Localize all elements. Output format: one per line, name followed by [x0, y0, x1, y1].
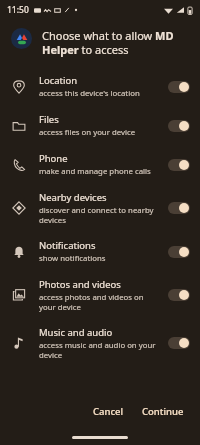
- button[interactable]: Toggle permission: [168, 81, 190, 93]
- staticText: Cancel: [93, 405, 124, 418]
- staticText: Files: [39, 113, 59, 126]
- staticText: access music and audio on your device: [39, 340, 160, 360]
- button[interactable]: Continue: [136, 400, 190, 423]
- staticText: Choose what to allow MD Helper to access: [42, 28, 186, 57]
- button[interactable]: Nearby devices: [0, 184, 200, 232]
- staticText: Continue: [142, 405, 184, 418]
- staticText: Photos and videos: [39, 278, 121, 291]
- button[interactable]: Toggle permission: [168, 289, 190, 301]
- button[interactable]: Toggle permission: [168, 120, 190, 132]
- button[interactable]: Phone: [0, 145, 200, 184]
- staticText: access this device's location: [39, 88, 140, 99]
- staticText: access photos and videos on your device: [39, 292, 160, 312]
- staticText: make and manage phone calls: [39, 166, 151, 177]
- button[interactable]: Cancel: [87, 400, 130, 423]
- button[interactable]: Music and audio: [0, 319, 200, 367]
- staticText: access files on your device: [39, 127, 136, 138]
- button[interactable]: Files: [0, 106, 200, 145]
- button[interactable]: Toggle permission: [168, 159, 190, 171]
- staticText: show notifications: [39, 253, 106, 264]
- button[interactable]: Notifications: [0, 232, 200, 271]
- staticText: 11:50: [7, 4, 29, 16]
- staticText: Music and audio: [39, 326, 113, 339]
- button[interactable]: Toggle permission: [168, 202, 190, 214]
- staticText: Phone: [39, 152, 68, 165]
- button[interactable]: Location: [0, 67, 200, 106]
- staticText: Notifications: [39, 239, 96, 252]
- staticText: discover and connect to nearby devices: [39, 205, 160, 225]
- button[interactable]: Photos and videos: [0, 271, 200, 319]
- staticText: Nearby devices: [39, 191, 107, 204]
- staticText: Location: [39, 74, 78, 87]
- button[interactable]: Toggle permission: [168, 337, 190, 349]
- button[interactable]: Toggle permission: [168, 246, 190, 258]
